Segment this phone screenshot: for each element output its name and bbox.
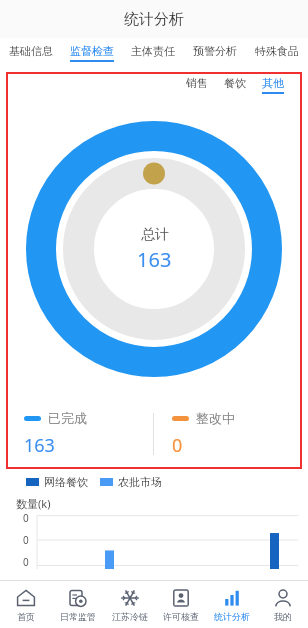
staticText: 首页 (17, 611, 35, 622)
button[interactable]: 整改中 (154, 399, 302, 469)
staticText: 特殊食品 (255, 44, 299, 58)
button[interactable]: 江苏冷链 (104, 581, 155, 628)
staticText: 总计 (141, 226, 169, 244)
staticText: 许可核查 (163, 611, 199, 622)
staticText: 主体责任 (131, 44, 175, 58)
staticText: 0 (23, 533, 29, 547)
staticText: 我的 (274, 611, 292, 622)
staticText: 统计分析 (124, 10, 184, 29)
staticText: 0 (23, 511, 29, 525)
staticText: 监督检查 (70, 44, 114, 58)
staticText: 统计分析 (214, 611, 250, 622)
staticText: 数量(k) (16, 496, 51, 511)
staticText: 预警分析 (193, 44, 237, 58)
staticText: 江苏冷链 (112, 611, 148, 622)
button[interactable]: 特殊食品 (246, 38, 308, 68)
staticText: 0 (23, 555, 29, 569)
staticText: 农批市场 (118, 475, 162, 489)
staticText: 整改中 (196, 410, 235, 426)
button[interactable]: 统计分析 (206, 581, 257, 628)
staticText: 餐饮 (224, 76, 246, 90)
button[interactable]: 已完成 (6, 399, 153, 469)
staticText: 已完成 (48, 410, 87, 426)
staticText: 163 (24, 433, 55, 458)
button[interactable]: 许可核查 (155, 581, 206, 628)
staticText: 0 (172, 433, 183, 458)
staticText: 其他 (262, 76, 284, 90)
button[interactable]: 主体责任 (122, 38, 184, 68)
button[interactable]: 基础信息 (0, 38, 61, 68)
staticText: 基础信息 (9, 44, 53, 58)
button[interactable]: 日常监管 (52, 581, 104, 628)
button[interactable]: 其他 (254, 76, 292, 94)
staticText: 日常监管 (60, 611, 96, 622)
button[interactable]: 监督检查 (61, 38, 122, 68)
button[interactable]: 首页 (0, 581, 52, 628)
button[interactable]: 餐饮 (216, 76, 254, 94)
staticText: 网络餐饮 (44, 475, 88, 489)
staticText: 销售 (186, 76, 208, 90)
button[interactable]: 预警分析 (184, 38, 246, 68)
button[interactable]: 我的 (257, 581, 308, 628)
staticText: 163 (137, 246, 172, 273)
button[interactable]: 销售 (178, 76, 216, 94)
